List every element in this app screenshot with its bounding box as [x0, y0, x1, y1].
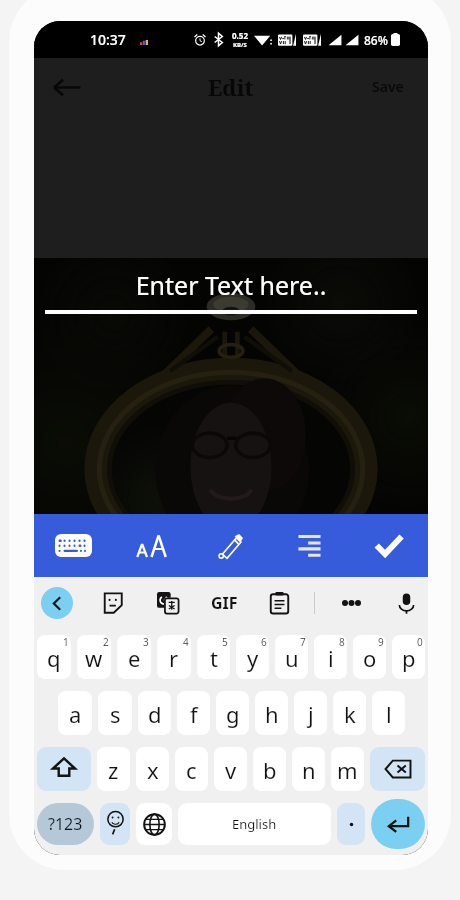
staticText: 7 — [300, 635, 306, 649]
button[interactable]: l — [372, 691, 405, 735]
staticText: Save — [372, 77, 404, 96]
button[interactable]: v — [214, 747, 247, 791]
button[interactable]: w — [77, 635, 111, 679]
staticText: v — [225, 755, 237, 785]
staticText: y — [247, 643, 259, 673]
staticText: 9 — [378, 635, 384, 649]
staticText: f — [190, 699, 198, 729]
staticText: 6 — [261, 635, 267, 649]
staticText: 5 — [222, 635, 228, 649]
button[interactable]: Keyboard — [34, 514, 112, 577]
button[interactable]: Voice input — [388, 585, 424, 621]
button[interactable]: e — [117, 635, 151, 679]
button[interactable]: b — [253, 747, 286, 791]
button[interactable]: Shift — [37, 747, 91, 791]
button[interactable]: Change language — [136, 803, 172, 845]
staticText: p — [402, 643, 416, 673]
button[interactable]: Align — [270, 514, 349, 577]
staticText: h — [265, 699, 279, 729]
staticText: k — [344, 699, 356, 729]
button[interactable]: d — [138, 691, 171, 735]
button[interactable]: Done — [349, 514, 428, 577]
button[interactable]: f — [177, 691, 210, 735]
staticText: Edit — [208, 72, 254, 102]
staticText: English — [232, 815, 277, 833]
staticText: a — [69, 699, 82, 729]
staticText: r — [169, 643, 179, 673]
button[interactable]: q — [37, 635, 71, 679]
staticText: ?123 — [48, 813, 83, 835]
button[interactable]: k — [333, 691, 366, 735]
button[interactable]: a — [58, 691, 92, 735]
staticText: 2 — [103, 635, 109, 649]
staticText: t — [210, 643, 218, 673]
button[interactable]: Period — [337, 803, 365, 845]
staticText: o — [363, 643, 377, 673]
staticText: n — [302, 755, 316, 785]
button[interactable]: i — [314, 635, 347, 679]
button[interactable]: Back — [41, 587, 73, 619]
button[interactable]: Translate — [150, 585, 186, 621]
button[interactable]: u — [275, 635, 308, 679]
button[interactable]: t — [197, 635, 230, 679]
staticText: l — [386, 699, 392, 729]
button[interactable]: Draw — [191, 514, 270, 577]
button[interactable]: Stickers — [94, 585, 130, 621]
button[interactable]: o — [353, 635, 386, 679]
button[interactable]: GIF — [206, 585, 242, 621]
staticText: s — [110, 699, 121, 729]
staticText: j — [308, 699, 314, 729]
button[interactable]: Backspace — [370, 747, 425, 791]
staticText: w — [85, 643, 103, 673]
button[interactable]: n — [292, 747, 325, 791]
staticText: g — [226, 699, 240, 729]
staticText: Enter Text here.. — [34, 268, 428, 302]
staticText: 0 — [417, 635, 423, 649]
button[interactable]: p — [392, 635, 425, 679]
staticText: 10:37 — [90, 30, 126, 49]
button[interactable]: r — [157, 635, 191, 679]
button[interactable]: Text size — [112, 514, 191, 577]
staticText: q — [47, 643, 61, 673]
staticText: 1 — [63, 635, 69, 649]
staticText: 4 — [183, 635, 189, 649]
staticText: 0.52 — [232, 30, 248, 41]
button[interactable]: x — [136, 747, 169, 791]
button[interactable]: g — [216, 691, 249, 735]
button[interactable]: y — [236, 635, 269, 679]
button[interactable]: Save — [362, 67, 414, 106]
button[interactable]: z — [97, 747, 130, 791]
button[interactable]: s — [98, 691, 132, 735]
staticText: KB/S — [233, 41, 247, 49]
staticText: GIF — [211, 592, 238, 614]
staticText: z — [108, 755, 119, 785]
staticText: d — [148, 699, 162, 729]
staticText: i — [328, 643, 334, 673]
staticText: x — [147, 755, 159, 785]
button[interactable]: j — [294, 691, 327, 735]
staticText: 86% — [364, 32, 388, 48]
staticText: b — [263, 755, 277, 785]
button[interactable]: m — [331, 747, 364, 791]
button[interactable]: h — [255, 691, 288, 735]
button[interactable]: c — [175, 747, 208, 791]
staticText: u — [285, 643, 299, 673]
button[interactable]: Clipboard — [261, 585, 297, 621]
button[interactable]: Emoji — [100, 803, 130, 845]
button[interactable]: English — [178, 803, 331, 845]
button[interactable]: Back — [42, 63, 88, 109]
button[interactable]: Enter — [371, 799, 425, 849]
staticText: e — [128, 643, 141, 673]
staticText: c — [186, 755, 197, 785]
button[interactable]: ?123 — [37, 803, 94, 845]
staticText: 8 — [339, 635, 345, 649]
staticText: m — [337, 755, 358, 785]
button[interactable]: More options — [333, 585, 369, 621]
staticText: 3 — [143, 635, 149, 649]
